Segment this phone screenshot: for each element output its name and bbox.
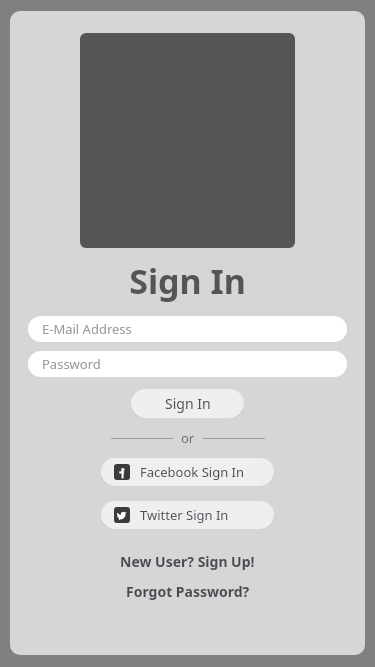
staticText: Sign In [165, 394, 211, 413]
staticText: Facebook Sign In [140, 463, 245, 481]
button[interactable]: Forgot Password? [118, 579, 258, 604]
staticText: Sign In [129, 258, 246, 304]
button[interactable]: Password [28, 351, 347, 377]
button[interactable]: E-Mail Address [28, 316, 347, 342]
other: App logo [80, 33, 295, 248]
button[interactable]: Facebook Sign In [101, 458, 274, 486]
staticText: Forgot Password? [126, 582, 250, 601]
staticText: New User? Sign Up! [120, 552, 255, 571]
staticText: or [181, 429, 195, 447]
button[interactable]: New User? Sign Up! [112, 549, 263, 574]
button[interactable]: Sign In [131, 389, 244, 418]
staticText: E-Mail Address [42, 320, 132, 338]
staticText: Twitter Sign In [140, 506, 229, 524]
button[interactable]: Twitter Sign In [101, 501, 274, 529]
staticText: Password [42, 355, 101, 373]
